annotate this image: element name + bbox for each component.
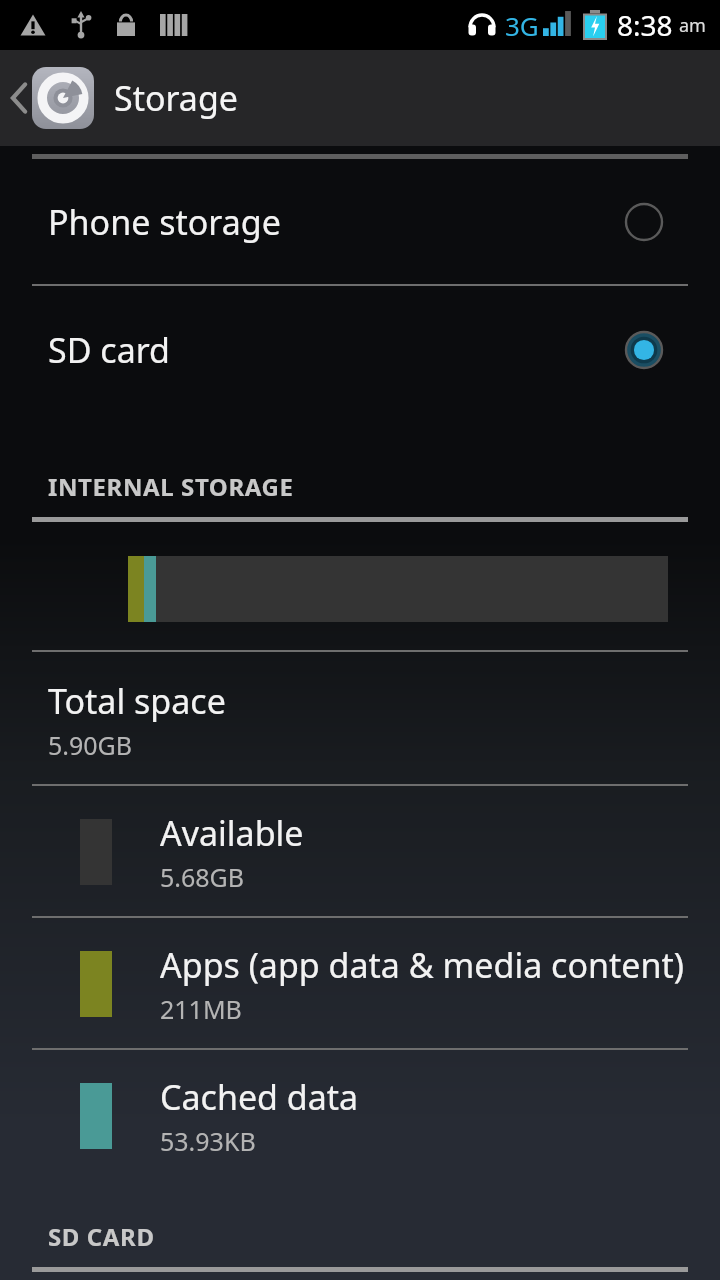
button[interactable]: Total space <box>0 652 720 784</box>
staticText: 8:38 <box>617 6 673 44</box>
staticText: SD card <box>48 327 170 373</box>
staticText: 3G <box>505 8 539 43</box>
button[interactable]: SD card <box>0 286 720 414</box>
staticText: INTERNAL STORAGE <box>48 470 294 503</box>
staticText: Apps (app data & media content) <box>160 942 684 988</box>
staticText: Cached data <box>160 1074 359 1120</box>
staticText: Total space <box>48 678 226 724</box>
button[interactable]: Phone storage <box>0 159 720 284</box>
staticText: 5.68GB <box>160 860 245 894</box>
staticText: SD CARD <box>48 1220 155 1253</box>
staticText: 5.90GB <box>48 728 133 762</box>
staticText: Phone storage <box>48 199 281 245</box>
staticText: am <box>679 13 706 38</box>
button[interactable]: Cached data <box>0 1050 720 1180</box>
staticText: 211MB <box>160 992 242 1026</box>
button[interactable]: Available <box>0 786 720 916</box>
staticText: Available <box>160 810 304 856</box>
staticText: Storage <box>114 75 239 121</box>
staticText: 53.93KB <box>160 1124 256 1158</box>
button[interactable]: Apps (app data & media content) <box>0 918 720 1048</box>
button[interactable]: Navigate up <box>0 50 98 146</box>
